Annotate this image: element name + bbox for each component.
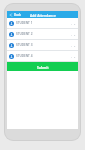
staticText: | P: [71, 55, 76, 58]
staticText: | P: [71, 44, 76, 47]
button[interactable]: STUDENT 4: [7, 51, 78, 61]
staticText: | P: [71, 22, 76, 25]
staticText: STUDENT 2: [16, 32, 71, 36]
staticText: Add Attendance: [30, 13, 56, 17]
staticText: Back: [14, 13, 22, 17]
button[interactable]: Submit: [7, 62, 78, 71]
other: Back: [9, 13, 13, 17]
button[interactable]: STUDENT 3: [7, 40, 78, 50]
staticText: Submit: [37, 65, 49, 69]
button[interactable]: STUDENT 2: [7, 29, 78, 39]
staticText: STUDENT 1: [16, 21, 71, 25]
button[interactable]: STUDENT 1: [7, 18, 78, 28]
staticText: STUDENT 3: [16, 43, 71, 47]
staticText: | P: [71, 33, 76, 36]
button[interactable]: Back: [7, 11, 23, 18]
staticText: STUDENT 4: [16, 54, 71, 58]
